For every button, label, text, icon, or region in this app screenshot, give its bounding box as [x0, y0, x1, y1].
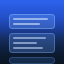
- button[interactable]: [9, 33, 55, 53]
- button[interactable]: [9, 14, 55, 29]
- button[interactable]: [9, 57, 55, 64]
